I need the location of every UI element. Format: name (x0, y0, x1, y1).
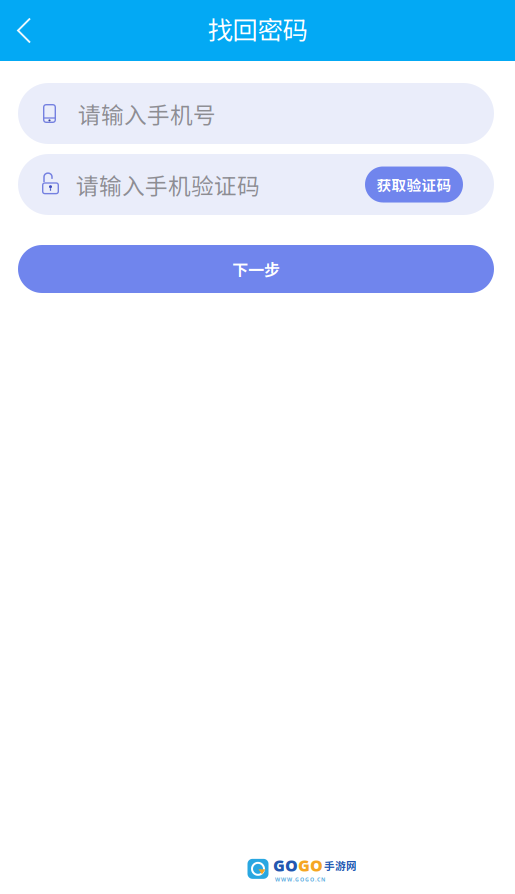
staticText: W W W . G O G O . C N (275, 876, 325, 883)
staticText: 下一步 (232, 257, 280, 281)
staticText: 获取验证码 (376, 174, 451, 195)
staticText: 请输入手机号 (78, 97, 216, 130)
staticText: GO (298, 855, 323, 876)
button[interactable]: 下一步 (18, 245, 494, 293)
staticText: 找回密码 (207, 10, 307, 47)
staticText: 手游网 (324, 858, 357, 873)
button[interactable]: Back (0, 0, 48, 61)
staticText: GO (273, 855, 298, 876)
button[interactable]: 获取验证码 (365, 166, 463, 202)
staticText: 请输入手机验证码 (76, 168, 260, 201)
